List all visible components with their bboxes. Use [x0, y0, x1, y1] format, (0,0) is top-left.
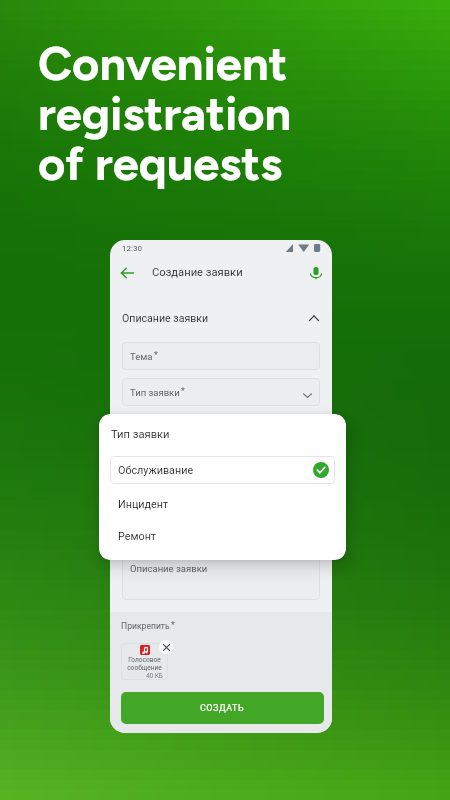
staticText: * [181, 386, 185, 397]
button[interactable]: Обслуживание [110, 456, 335, 484]
staticText: Описание заявки [130, 563, 208, 574]
staticText: Создание заявки [152, 266, 243, 279]
staticText: * [171, 620, 175, 631]
staticText: 12:30 [122, 244, 142, 253]
staticText: Обслуживание [118, 464, 194, 477]
staticText: Тип заявки [130, 387, 180, 398]
staticText: Инцидент [118, 498, 169, 511]
button[interactable]: Инцидент [110, 488, 335, 520]
button[interactable]: Тема [122, 342, 320, 370]
staticText: Тип заявки [111, 428, 170, 441]
staticText: Прикрепить [121, 621, 170, 631]
button[interactable]: Ремонт [110, 520, 335, 552]
staticText: * [154, 350, 158, 361]
button[interactable]: Тип заявки [122, 378, 320, 406]
button[interactable]: Voice input [305, 262, 327, 284]
button[interactable]: Back [116, 262, 138, 284]
button[interactable]: Голосовое сообщение [121, 643, 168, 680]
staticText: Голосовое сообщение [121, 656, 168, 671]
staticText: Тема [130, 351, 153, 362]
button[interactable]: Описание заявки [110, 307, 332, 329]
staticText: 40 КБ [146, 672, 163, 680]
button[interactable]: СОЗДАТЬ [121, 692, 324, 724]
staticText: Ремонт [118, 530, 157, 543]
staticText: Convenient registration of requests [38, 35, 292, 191]
button[interactable]: Описание заявки [122, 555, 320, 600]
staticText: СОЗДАТЬ [200, 703, 245, 714]
staticText: Описание заявки [122, 312, 209, 324]
button[interactable]: Remove attachment [159, 640, 173, 654]
